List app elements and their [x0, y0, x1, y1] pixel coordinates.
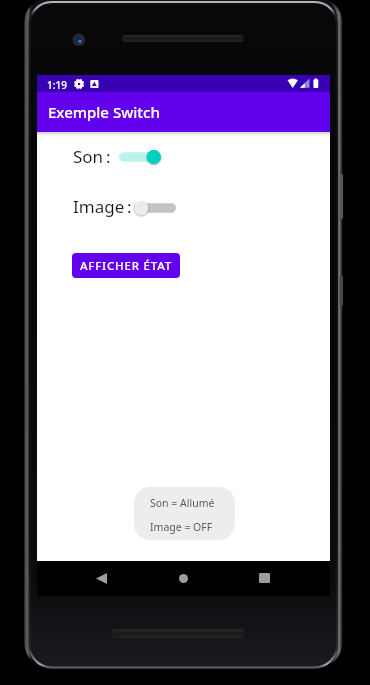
staticText: AFFICHER ÉTAT: [80, 258, 172, 274]
staticText: Image = OFF: [150, 520, 213, 534]
button[interactable]: Recent apps: [249, 563, 279, 593]
staticText: Son :: [73, 145, 111, 168]
button[interactable]: AFFICHER ÉTAT: [72, 253, 180, 278]
button[interactable]: Home: [168, 563, 198, 593]
staticText: Exemple Switch: [48, 102, 160, 122]
button[interactable]: Back: [86, 563, 116, 593]
staticText: Image :: [73, 195, 132, 218]
button[interactable]: Son : on: [119, 146, 161, 168]
staticText: Son = Allumé: [150, 496, 215, 510]
button[interactable]: Image : off: [134, 197, 176, 219]
staticText: 1:19: [47, 78, 67, 92]
